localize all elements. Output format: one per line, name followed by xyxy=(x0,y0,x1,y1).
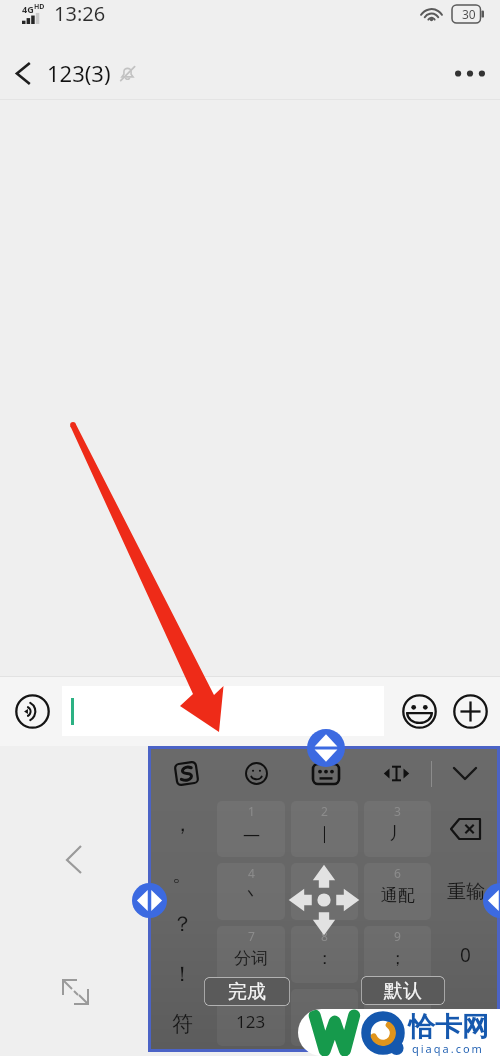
button[interactable]: More options xyxy=(440,46,500,100)
staticText: ！ xyxy=(172,961,193,987)
staticText: 通配 xyxy=(381,885,415,906)
staticText: 8 xyxy=(321,928,328,944)
staticText: 3 xyxy=(394,803,401,819)
staticText: ？ xyxy=(172,911,193,937)
staticText: — xyxy=(243,822,260,845)
button[interactable]: Resize keyboard right edge xyxy=(483,883,500,918)
button[interactable]: Emoji xyxy=(221,749,291,798)
button[interactable]: 5 xyxy=(291,863,358,920)
staticText: 30 xyxy=(462,6,476,22)
button[interactable]: 重输 xyxy=(434,860,497,923)
staticText: 4 xyxy=(248,865,255,881)
staticText: 4G xyxy=(22,3,34,15)
staticText: 123(3) xyxy=(47,58,111,88)
staticText: 2 xyxy=(321,803,328,819)
button[interactable]: 0 xyxy=(434,923,497,986)
button[interactable]: Resize keyboard horizontally xyxy=(132,883,167,918)
staticText: 完成 xyxy=(228,980,266,1004)
staticText: 恰卡网 xyxy=(408,1010,489,1044)
button[interactable]: 默认 xyxy=(361,976,445,1005)
button[interactable] xyxy=(62,686,384,736)
button[interactable]: Keyboard layout xyxy=(291,749,361,798)
staticText: 13:26 xyxy=(54,0,106,27)
button[interactable]: Emoji xyxy=(394,686,444,736)
button[interactable]: Voice input xyxy=(6,685,58,737)
staticText: 符 xyxy=(172,1011,193,1037)
staticText: 1 xyxy=(248,803,255,819)
button[interactable]: 。 xyxy=(151,849,214,899)
staticText: ｜ xyxy=(316,823,333,844)
staticText: 分词 xyxy=(234,948,268,969)
button[interactable] xyxy=(434,986,497,1049)
button[interactable]: 8 xyxy=(291,926,358,983)
button[interactable]: Move cursor xyxy=(361,749,431,798)
button[interactable]: ！ xyxy=(151,949,214,999)
staticText: 丶 xyxy=(243,885,260,906)
button[interactable]: 9 xyxy=(364,926,431,983)
button[interactable]: 6 xyxy=(364,863,431,920)
staticText: 9 xyxy=(394,928,401,944)
button[interactable]: Backspace xyxy=(434,798,497,860)
button[interactable]: 1 xyxy=(217,801,285,857)
button[interactable]: 2 xyxy=(291,801,358,857)
button[interactable]: Hide keyboard xyxy=(432,749,497,798)
button[interactable]: Back xyxy=(0,46,46,100)
staticText: 丿 xyxy=(389,823,406,844)
button[interactable]: 123 xyxy=(217,989,285,1046)
button[interactable]: 4 xyxy=(217,863,285,920)
staticText: 。 xyxy=(172,861,193,887)
staticText: HD xyxy=(34,2,45,12)
button[interactable]: Move cursor xyxy=(288,864,360,936)
staticText: ； xyxy=(389,948,406,969)
button[interactable]: 7 xyxy=(217,926,285,983)
button[interactable]: ？ xyxy=(151,899,214,949)
button[interactable]: 3 xyxy=(364,801,431,857)
button[interactable]: ， xyxy=(151,798,214,849)
staticText: 123 xyxy=(236,1010,266,1033)
button[interactable]: Add attachment xyxy=(444,685,496,737)
button[interactable]: Resize keyboard vertically xyxy=(307,729,345,767)
button[interactable] xyxy=(291,989,358,1046)
staticText: qiaqa.com xyxy=(412,1041,484,1056)
staticText: 5 xyxy=(321,865,328,881)
staticText: 重输 xyxy=(447,880,485,904)
button[interactable]: Sogou input xyxy=(151,749,221,798)
staticText: 7 xyxy=(248,928,255,944)
staticText: ， xyxy=(172,811,193,837)
staticText: 0 xyxy=(460,942,471,968)
staticText: 默认 xyxy=(384,979,422,1003)
staticText: 6 xyxy=(394,865,401,881)
button[interactable] xyxy=(364,989,431,1046)
button[interactable]: 完成 xyxy=(204,977,290,1006)
button[interactable]: 符 xyxy=(151,999,214,1049)
staticText: ： xyxy=(316,948,333,969)
